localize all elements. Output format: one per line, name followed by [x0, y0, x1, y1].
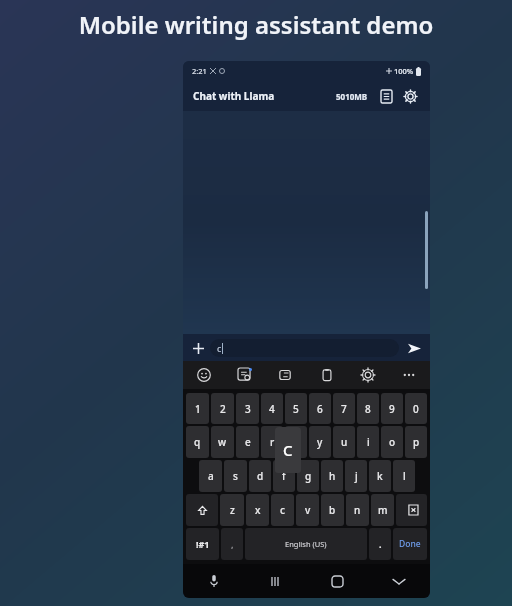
staticText: f — [282, 469, 286, 483]
button[interactable]: 8 — [357, 393, 379, 424]
staticText: 5 — [293, 402, 299, 416]
button[interactable]: . — [369, 528, 391, 560]
button[interactable]: Keyboard settings — [356, 363, 380, 387]
button[interactable]: !#1 — [186, 528, 219, 560]
button[interactable]: w — [211, 426, 234, 458]
button[interactable]: 5 — [285, 393, 307, 424]
button[interactable]: t — [285, 426, 307, 458]
button[interactable]: 0 — [405, 393, 427, 424]
staticText: , — [231, 538, 234, 550]
staticText: 8 — [365, 402, 371, 416]
button[interactable]: 6 — [309, 393, 331, 424]
staticText: w — [218, 435, 227, 449]
staticText: 100% — [394, 66, 414, 76]
staticText: s — [233, 469, 238, 483]
button[interactable] — [186, 494, 218, 526]
button[interactable]: 3 — [236, 393, 259, 424]
button[interactable]: Stickers — [233, 363, 257, 387]
button[interactable]: o — [381, 426, 403, 458]
button[interactable]: c — [271, 494, 294, 526]
button[interactable]: Add attachment — [189, 339, 207, 357]
button[interactable]: l — [393, 460, 415, 492]
button[interactable]: 9 — [381, 393, 403, 424]
button[interactable]: c — [210, 339, 399, 357]
staticText: g — [305, 469, 312, 483]
staticText: c — [217, 342, 222, 354]
button[interactable]: Notes — [376, 86, 396, 106]
button[interactable]: , — [221, 528, 243, 560]
staticText: 9 — [389, 402, 395, 416]
staticText: Done — [399, 538, 421, 550]
staticText: y — [317, 435, 323, 449]
button[interactable]: Emoji — [192, 363, 216, 387]
button[interactable]: GIF — [274, 363, 298, 387]
staticText: e — [245, 435, 251, 449]
staticText: d — [257, 469, 264, 483]
button[interactable]: y — [309, 426, 331, 458]
staticText: v — [305, 503, 311, 517]
button[interactable]: d — [249, 460, 271, 492]
staticText: n — [354, 503, 361, 517]
button[interactable]: 1 — [186, 393, 209, 424]
staticText: h — [329, 469, 336, 483]
button[interactable]: Clipboard — [315, 363, 339, 387]
button[interactable]: u — [333, 426, 355, 458]
staticText: b — [329, 503, 336, 517]
button[interactable]: j — [345, 460, 367, 492]
button[interactable]: q — [186, 426, 209, 458]
staticText: 5010MB — [336, 91, 368, 102]
button[interactable]: s — [224, 460, 247, 492]
button[interactable]: r — [261, 426, 283, 458]
staticText: !#1 — [196, 538, 210, 550]
button[interactable]: More options — [397, 363, 421, 387]
staticText: x — [255, 503, 261, 517]
button[interactable]: English (US) — [245, 528, 367, 560]
button[interactable]: 2 — [211, 393, 234, 424]
staticText: 6 — [317, 402, 323, 416]
staticText: 1 — [195, 402, 201, 416]
staticText: c — [280, 503, 285, 517]
button[interactable]: Home — [306, 564, 368, 598]
staticText: Mobile writing assistant demo — [0, 8, 512, 41]
button[interactable]: e — [236, 426, 259, 458]
staticText: Chat with Llama — [193, 89, 275, 103]
button[interactable]: g — [297, 460, 319, 492]
button[interactable]: i — [357, 426, 379, 458]
staticText: 7 — [341, 402, 347, 416]
button[interactable]: 4 — [261, 393, 283, 424]
button[interactable]: 7 — [333, 393, 355, 424]
button[interactable]: Send — [404, 338, 424, 358]
button[interactable]: f — [273, 460, 295, 492]
button[interactable]: Recents — [244, 564, 306, 598]
staticText: 2:21 — [192, 66, 207, 76]
button[interactable]: n — [346, 494, 369, 526]
button[interactable]: k — [369, 460, 391, 492]
staticText: q — [194, 435, 201, 449]
staticText: i — [367, 435, 370, 449]
staticText: k — [377, 469, 383, 483]
button[interactable]: Voice input — [183, 564, 244, 598]
staticText: a — [208, 469, 214, 483]
button[interactable]: a — [199, 460, 222, 492]
button[interactable]: b — [321, 494, 344, 526]
button[interactable]: h — [321, 460, 343, 492]
staticText: j — [355, 469, 358, 483]
button[interactable]: v — [296, 494, 319, 526]
button[interactable]: m — [371, 494, 394, 526]
staticText: C — [283, 440, 293, 460]
button[interactable]: Done — [393, 528, 427, 560]
staticText: p — [413, 435, 420, 449]
button[interactable]: Hide keyboard — [368, 564, 430, 598]
button[interactable]: z — [220, 494, 244, 526]
staticText: r — [270, 435, 275, 449]
button[interactable]: p — [405, 426, 427, 458]
staticText: 0 — [413, 402, 419, 416]
button[interactable]: x — [246, 494, 269, 526]
staticText: m — [378, 503, 388, 517]
button[interactable] — [396, 494, 427, 526]
staticText: . — [379, 538, 382, 550]
button[interactable]: Settings — [400, 86, 420, 106]
staticText: 3 — [245, 402, 251, 416]
staticText: z — [230, 503, 235, 517]
